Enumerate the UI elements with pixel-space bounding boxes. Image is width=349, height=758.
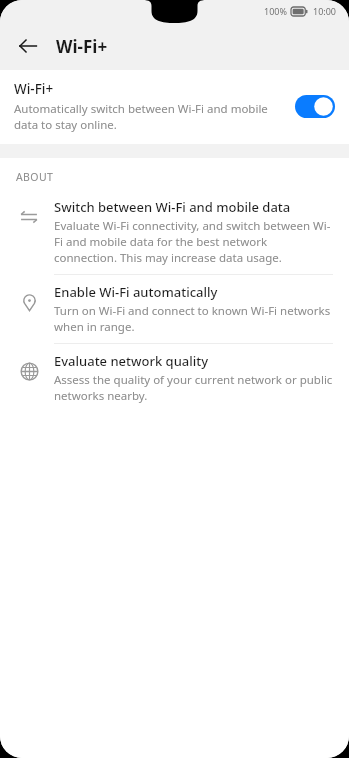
button[interactable]: Back [8,26,48,66]
other: Enable Wi-Fi automatically [14,291,44,313]
staticText: Automatically switch between Wi-Fi and m… [14,101,281,132]
staticText: 10:00 [313,5,337,17]
staticText: ABOUT [16,170,54,184]
staticText: 100% [264,5,287,17]
button[interactable]: Switch between Wi-Fi and mobile data [0,190,349,274]
staticText: Wi-Fi+ [56,35,108,58]
button[interactable]: Evaluate network quality [0,344,349,412]
button[interactable]: Wi-Fi+ toggle, on [295,95,335,118]
staticText: Turn on Wi-Fi and connect to known Wi-Fi… [54,303,333,335]
staticText: Wi-Fi+ [14,80,54,98]
other: Evaluate network quality [14,360,44,382]
staticText: Evaluate network quality [54,352,209,370]
button[interactable]: Enable Wi-Fi automatically [0,275,349,343]
other: Switch between Wi-Fi and mobile data [14,206,44,228]
staticText: Evaluate Wi-Fi connectivity, and switch … [54,218,333,266]
staticText: Assess the quality of your current netwo… [54,372,333,404]
staticText: Switch between Wi-Fi and mobile data [54,198,291,216]
staticText: Enable Wi-Fi automatically [54,283,218,301]
button[interactable]: Wi-Fi+ [0,70,349,144]
